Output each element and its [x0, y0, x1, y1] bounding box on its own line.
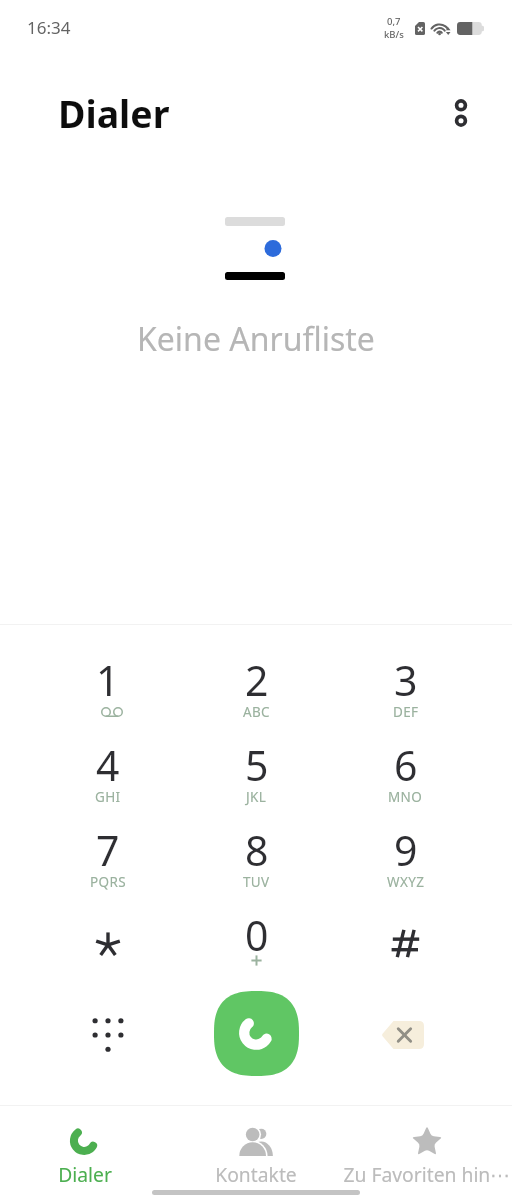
staticText: DEF: [393, 703, 419, 721]
staticText: GHI: [95, 788, 121, 806]
staticText: PQRS: [90, 873, 126, 891]
button[interactable]: Key *: [33, 903, 182, 988]
staticText: 9: [394, 822, 418, 878]
button[interactable]: Kontakte: [170, 1106, 341, 1184]
button[interactable]: Key 0: [182, 903, 331, 988]
staticText: 4: [96, 737, 120, 793]
staticText: 7: [96, 822, 120, 878]
staticText: WXYZ: [387, 873, 425, 891]
button[interactable]: Key #: [331, 903, 480, 988]
staticText: kB/s: [384, 28, 404, 41]
button[interactable]: Key 7: [33, 818, 182, 903]
staticText: 8: [245, 822, 269, 878]
staticText: Keine Anrufliste: [137, 317, 375, 361]
staticText: 2: [245, 652, 269, 708]
staticText: JKL: [246, 788, 267, 806]
button[interactable]: Zu Favoriten hin⋯: [341, 1106, 512, 1184]
button[interactable]: Key 3: [331, 648, 480, 733]
staticText: 0: [245, 907, 269, 963]
staticText: 6: [394, 737, 418, 793]
staticText: 5: [245, 737, 269, 793]
staticText: Kontakte: [215, 1161, 297, 1187]
button[interactable]: Key 8: [182, 818, 331, 903]
button[interactable]: Key 4: [33, 733, 182, 818]
staticText: 1: [96, 652, 120, 708]
button[interactable]: More options: [438, 90, 484, 136]
staticText: Zu Favoriten hin⋯: [343, 1161, 510, 1187]
staticText: MNO: [388, 788, 423, 806]
button[interactable]: Key 9: [331, 818, 480, 903]
button[interactable]: Dialer: [0, 1106, 170, 1184]
button[interactable]: Key 6: [331, 733, 480, 818]
staticText: ABC: [243, 703, 270, 721]
button[interactable]: Backspace: [374, 1001, 438, 1065]
staticText: Dialer: [58, 1161, 112, 1187]
staticText: 0,7: [387, 15, 401, 28]
staticText: Dialer: [58, 88, 170, 139]
staticText: 3: [394, 652, 418, 708]
staticText: TUV: [243, 873, 270, 891]
button[interactable]: Key 1: [33, 648, 182, 733]
button[interactable]: Key 5: [182, 733, 331, 818]
button[interactable]: Hide keypad: [76, 1001, 140, 1065]
staticText: 16:34: [27, 16, 71, 39]
button[interactable]: Call: [214, 991, 299, 1076]
button[interactable]: Key 2: [182, 648, 331, 733]
